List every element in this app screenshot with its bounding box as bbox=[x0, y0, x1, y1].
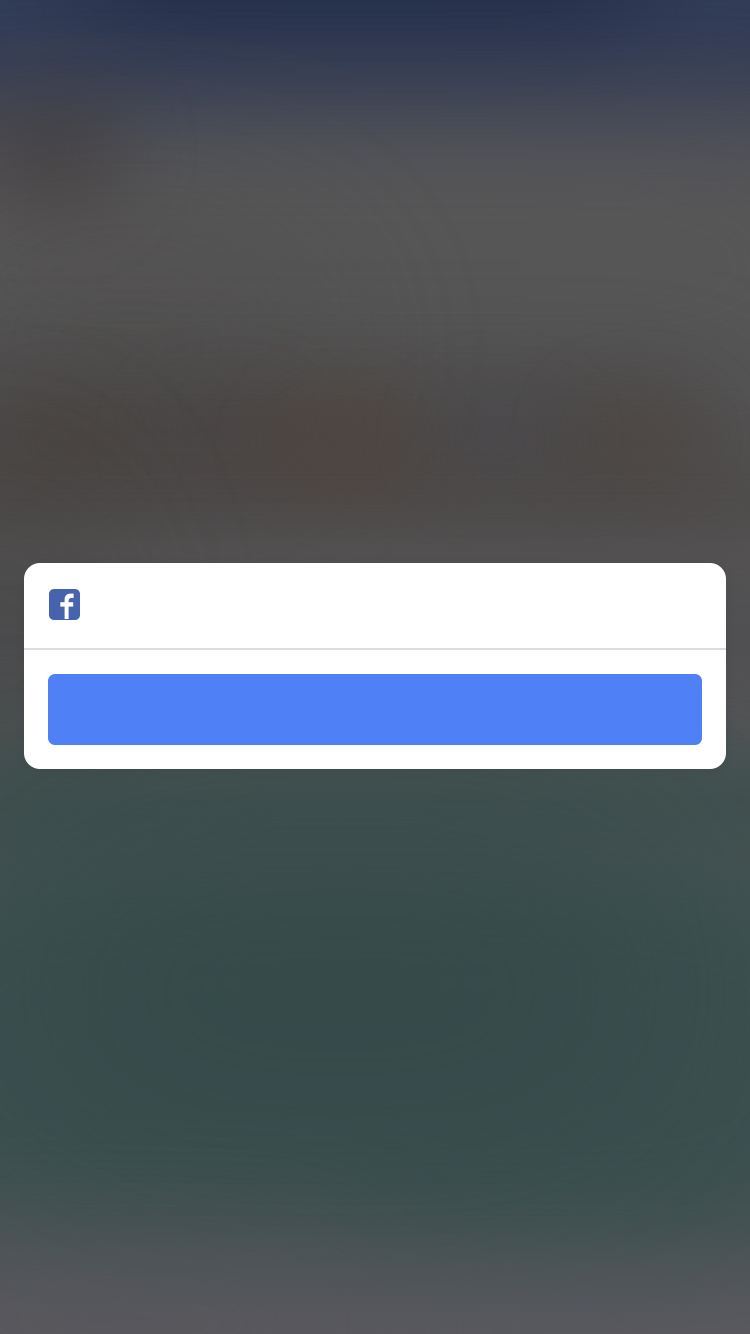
button[interactable]: Continue with Facebook bbox=[24, 650, 726, 769]
